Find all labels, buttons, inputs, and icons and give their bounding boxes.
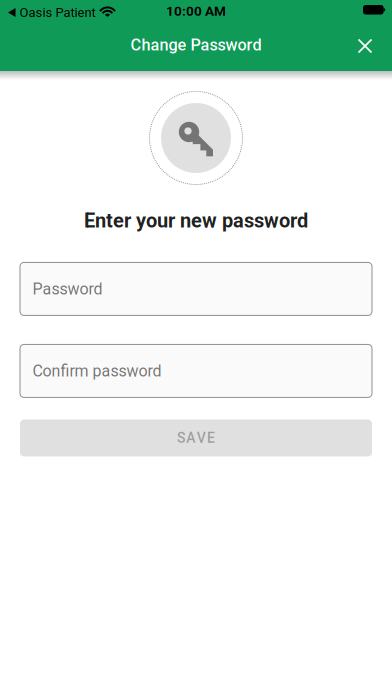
staticText: Password (32, 280, 102, 298)
button[interactable]: Close (344, 26, 392, 71)
staticText: Enter your new password (84, 209, 308, 232)
button[interactable]: Confirm password (20, 344, 372, 397)
staticText: Change Password (130, 35, 261, 55)
staticText: SAVE (177, 430, 215, 446)
staticText: 10:00 AM (166, 3, 226, 19)
button[interactable]: Password (20, 262, 372, 315)
button[interactable]: SAVE (20, 419, 372, 456)
staticText: Confirm password (32, 362, 161, 380)
button[interactable]: Back to Oasis Patient (8, 5, 115, 20)
staticText: Oasis Patient (19, 5, 95, 20)
